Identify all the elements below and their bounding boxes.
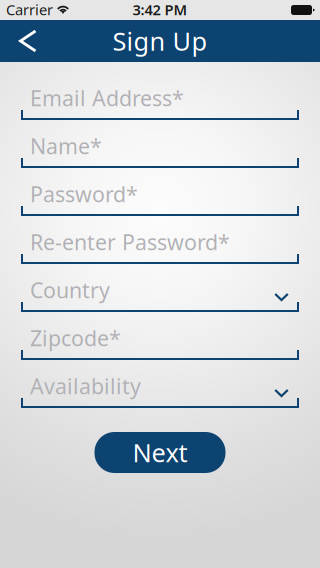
button[interactable]: Country bbox=[21, 272, 299, 312]
button[interactable]: Name* bbox=[21, 128, 299, 168]
staticText: Email Address* bbox=[30, 84, 184, 112]
button[interactable]: Back bbox=[0, 20, 56, 62]
button[interactable]: Re-enter Password* bbox=[21, 224, 299, 264]
staticText: Next bbox=[132, 436, 187, 469]
staticText: Name* bbox=[30, 132, 102, 160]
staticText: Country bbox=[30, 276, 110, 304]
staticText: 3:42 PM bbox=[132, 0, 187, 19]
staticText: Re-enter Password* bbox=[30, 228, 230, 256]
staticText: Availability bbox=[30, 372, 141, 400]
button[interactable]: Next bbox=[94, 432, 225, 473]
button[interactable]: Password* bbox=[21, 176, 299, 216]
staticText: Zipcode* bbox=[30, 324, 121, 352]
staticText: Password* bbox=[30, 180, 138, 208]
button[interactable]: Email Address* bbox=[21, 80, 299, 120]
button[interactable]: Zipcode* bbox=[21, 320, 299, 360]
staticText: Sign Up bbox=[112, 24, 207, 58]
button[interactable]: Availability bbox=[21, 368, 299, 408]
staticText: Carrier bbox=[6, 0, 53, 19]
